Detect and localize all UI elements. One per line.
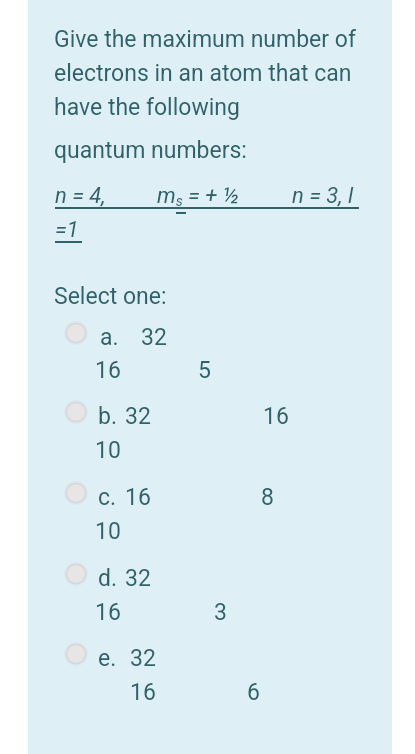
staticText: quantum numbers: — [54, 137, 247, 164]
staticText: 6 — [247, 679, 260, 706]
staticText: 16 — [95, 357, 121, 384]
staticText: 32 — [141, 324, 167, 351]
staticText: =1 — [55, 217, 79, 243]
staticText: 16 — [130, 679, 156, 706]
staticText: electrons in an atom that can — [54, 60, 352, 87]
staticText: 16 — [263, 403, 289, 430]
staticText: n = 4, — [55, 183, 106, 209]
staticText: 5 — [198, 357, 211, 384]
staticText: Select one: — [54, 283, 167, 310]
button[interactable]: Select answer option — [63, 480, 89, 506]
staticText: b. — [98, 403, 117, 430]
staticText: 32 — [125, 403, 151, 430]
staticText: 10 — [95, 437, 121, 464]
staticText: 16 — [95, 599, 121, 626]
staticText: 32 — [130, 645, 156, 672]
staticText: c. — [98, 484, 117, 511]
staticText: ms = + ½ — [157, 183, 240, 210]
staticText: 8 — [261, 484, 274, 511]
staticText: have the following — [54, 94, 240, 121]
staticText: n = 3, l — [292, 183, 354, 209]
staticText: 3 — [214, 599, 227, 626]
staticText: e. — [98, 645, 117, 672]
staticText: 16 — [125, 484, 151, 511]
staticText: a. — [100, 324, 119, 351]
button[interactable]: Select answer option — [63, 320, 89, 346]
button[interactable]: Select answer option — [63, 561, 89, 587]
staticText: 32 — [125, 565, 151, 592]
button[interactable]: Select answer option — [63, 641, 89, 667]
button[interactable]: Select answer option — [63, 399, 89, 425]
staticText: 10 — [95, 518, 121, 545]
staticText: d. — [98, 565, 118, 592]
staticText: Give the maximum number of — [54, 26, 356, 53]
